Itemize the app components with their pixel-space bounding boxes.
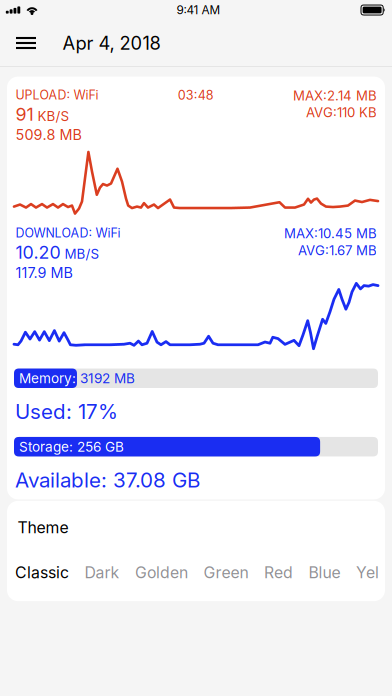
staticText: Dark — [84, 563, 119, 582]
staticText: DOWNLOAD: WiFi — [15, 226, 120, 241]
staticText: Green — [203, 563, 248, 582]
staticText: 509.8 MB — [15, 126, 81, 143]
staticText: Golden — [135, 563, 188, 582]
staticText: 91 — [15, 104, 33, 125]
staticText: 3192 MB — [80, 370, 135, 386]
staticText: MB/S — [64, 246, 99, 262]
staticText: UPLOAD: WiFi — [15, 88, 98, 103]
staticText: 10.20 — [15, 242, 60, 263]
staticText: AVG:1.67 MB — [298, 242, 377, 258]
staticText: Available: 37.08 GB — [15, 467, 200, 492]
staticText: Theme — [17, 518, 68, 537]
staticText: Red — [264, 563, 293, 582]
staticText: Used: 17% — [15, 399, 118, 424]
staticText: MAX:2.14 MB — [293, 88, 377, 104]
button[interactable]: Golden — [135, 563, 188, 582]
button[interactable]: Blue — [308, 563, 340, 582]
staticText: Apr 4, 2018 — [62, 32, 160, 54]
staticText: 9:41 AM — [176, 3, 220, 17]
button[interactable]: Memory: — [7, 368, 385, 388]
button[interactable]: Dark — [84, 563, 119, 582]
staticText: KB/S — [37, 108, 69, 124]
staticText: AVG:110 KB — [306, 105, 377, 121]
button[interactable]: Yel — [356, 563, 379, 582]
staticText: Blue — [308, 563, 340, 582]
staticText: 117.9 MB — [15, 264, 72, 281]
button[interactable]: Menu — [8, 25, 44, 60]
staticText: Classic — [15, 563, 69, 582]
button[interactable]: Storage: 256 GB — [7, 437, 385, 456]
staticText: Yel — [356, 563, 379, 582]
staticText: Memory: — [19, 370, 80, 386]
staticText: Storage: 256 GB — [19, 438, 124, 455]
staticText: Available placeholder — [7, 376, 214, 400]
button[interactable]: Classic — [15, 563, 69, 582]
staticText: 03:48 — [178, 88, 214, 103]
button[interactable]: Green — [203, 563, 248, 582]
staticText: MAX:10.45 MB — [284, 226, 377, 242]
button[interactable]: Red — [264, 563, 293, 582]
